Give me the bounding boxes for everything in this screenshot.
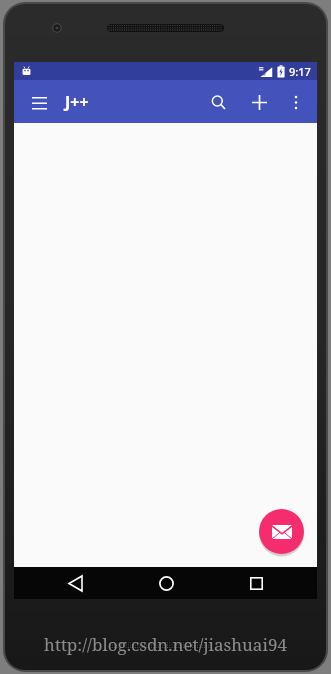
button[interactable]: Compose message	[259, 509, 304, 554]
staticText: J++	[65, 91, 89, 113]
button[interactable]: More options	[279, 85, 313, 119]
button[interactable]: Back	[45, 567, 105, 599]
staticText: 9:17	[289, 64, 311, 79]
button[interactable]: Search	[200, 84, 236, 120]
button[interactable]: Open navigation drawer	[22, 85, 56, 119]
button[interactable]: Recent apps	[226, 567, 286, 599]
staticText: http://blog.csdn.net/jiashuai94	[44, 633, 287, 656]
button[interactable]: Add	[241, 84, 277, 120]
button[interactable]: Home	[136, 567, 196, 599]
